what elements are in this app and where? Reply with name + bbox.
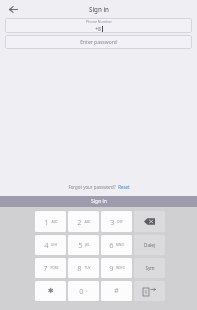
staticText: Sign in xyxy=(89,5,109,13)
button[interactable]: Dalej xyxy=(134,235,165,255)
button[interactable]: Reset xyxy=(118,184,130,190)
button[interactable]: Delete xyxy=(134,211,165,232)
staticText: DEF xyxy=(117,220,123,224)
button[interactable]: Switch keyboard xyxy=(134,281,165,301)
staticText: WXYZ xyxy=(116,266,125,270)
button[interactable]: 8 xyxy=(68,258,99,278)
staticText: GHI xyxy=(51,243,57,247)
staticText: 8 xyxy=(77,263,82,273)
staticText: Sign in xyxy=(91,198,107,205)
staticText: 7 xyxy=(43,263,48,273)
staticText: Forgot your password? xyxy=(68,184,116,190)
button[interactable]: Back xyxy=(6,2,20,16)
staticText: +8 xyxy=(95,25,101,32)
staticText: Reset xyxy=(118,184,130,190)
button[interactable]: Sign in xyxy=(0,196,197,207)
staticText: 9 xyxy=(109,263,114,273)
button[interactable]: 9 xyxy=(101,258,132,278)
staticText: Enter password xyxy=(80,39,117,46)
button[interactable]: 6 xyxy=(101,235,132,255)
button[interactable]: 1 xyxy=(35,211,66,232)
staticText: ✱ xyxy=(48,287,54,295)
staticText: ABC xyxy=(84,220,91,224)
staticText: # xyxy=(114,286,119,296)
staticText: Dalej xyxy=(144,242,155,248)
staticText: 2 xyxy=(77,217,82,227)
staticText: JKL xyxy=(85,243,90,247)
staticText: Phone Number xyxy=(86,19,112,24)
button[interactable]: # xyxy=(101,281,132,301)
button[interactable]: 3 xyxy=(101,211,132,232)
button[interactable]: 0 xyxy=(68,281,99,301)
button[interactable]: 2 xyxy=(68,211,99,232)
staticText: 5 xyxy=(78,240,83,250)
staticText: MNO xyxy=(116,243,124,247)
staticText: ABC xyxy=(51,220,58,224)
button[interactable]: 5 xyxy=(68,235,99,255)
staticText: 4 xyxy=(44,240,49,250)
staticText: 3 xyxy=(110,217,115,227)
staticText: 1 xyxy=(44,217,49,227)
button[interactable]: Phone Number xyxy=(5,18,192,33)
button[interactable]: ✱ xyxy=(35,281,66,301)
staticText: Sym xyxy=(145,265,155,271)
staticText: PQRS xyxy=(50,266,59,270)
button[interactable]: 7 xyxy=(35,258,66,278)
staticText: 0 xyxy=(79,286,84,296)
button[interactable]: 4 xyxy=(35,235,66,255)
staticText: TUV xyxy=(84,266,91,270)
staticText: 6 xyxy=(109,240,114,250)
button[interactable]: Enter password xyxy=(5,35,192,49)
staticText: + xyxy=(86,289,88,293)
button[interactable]: Sym xyxy=(134,258,165,278)
